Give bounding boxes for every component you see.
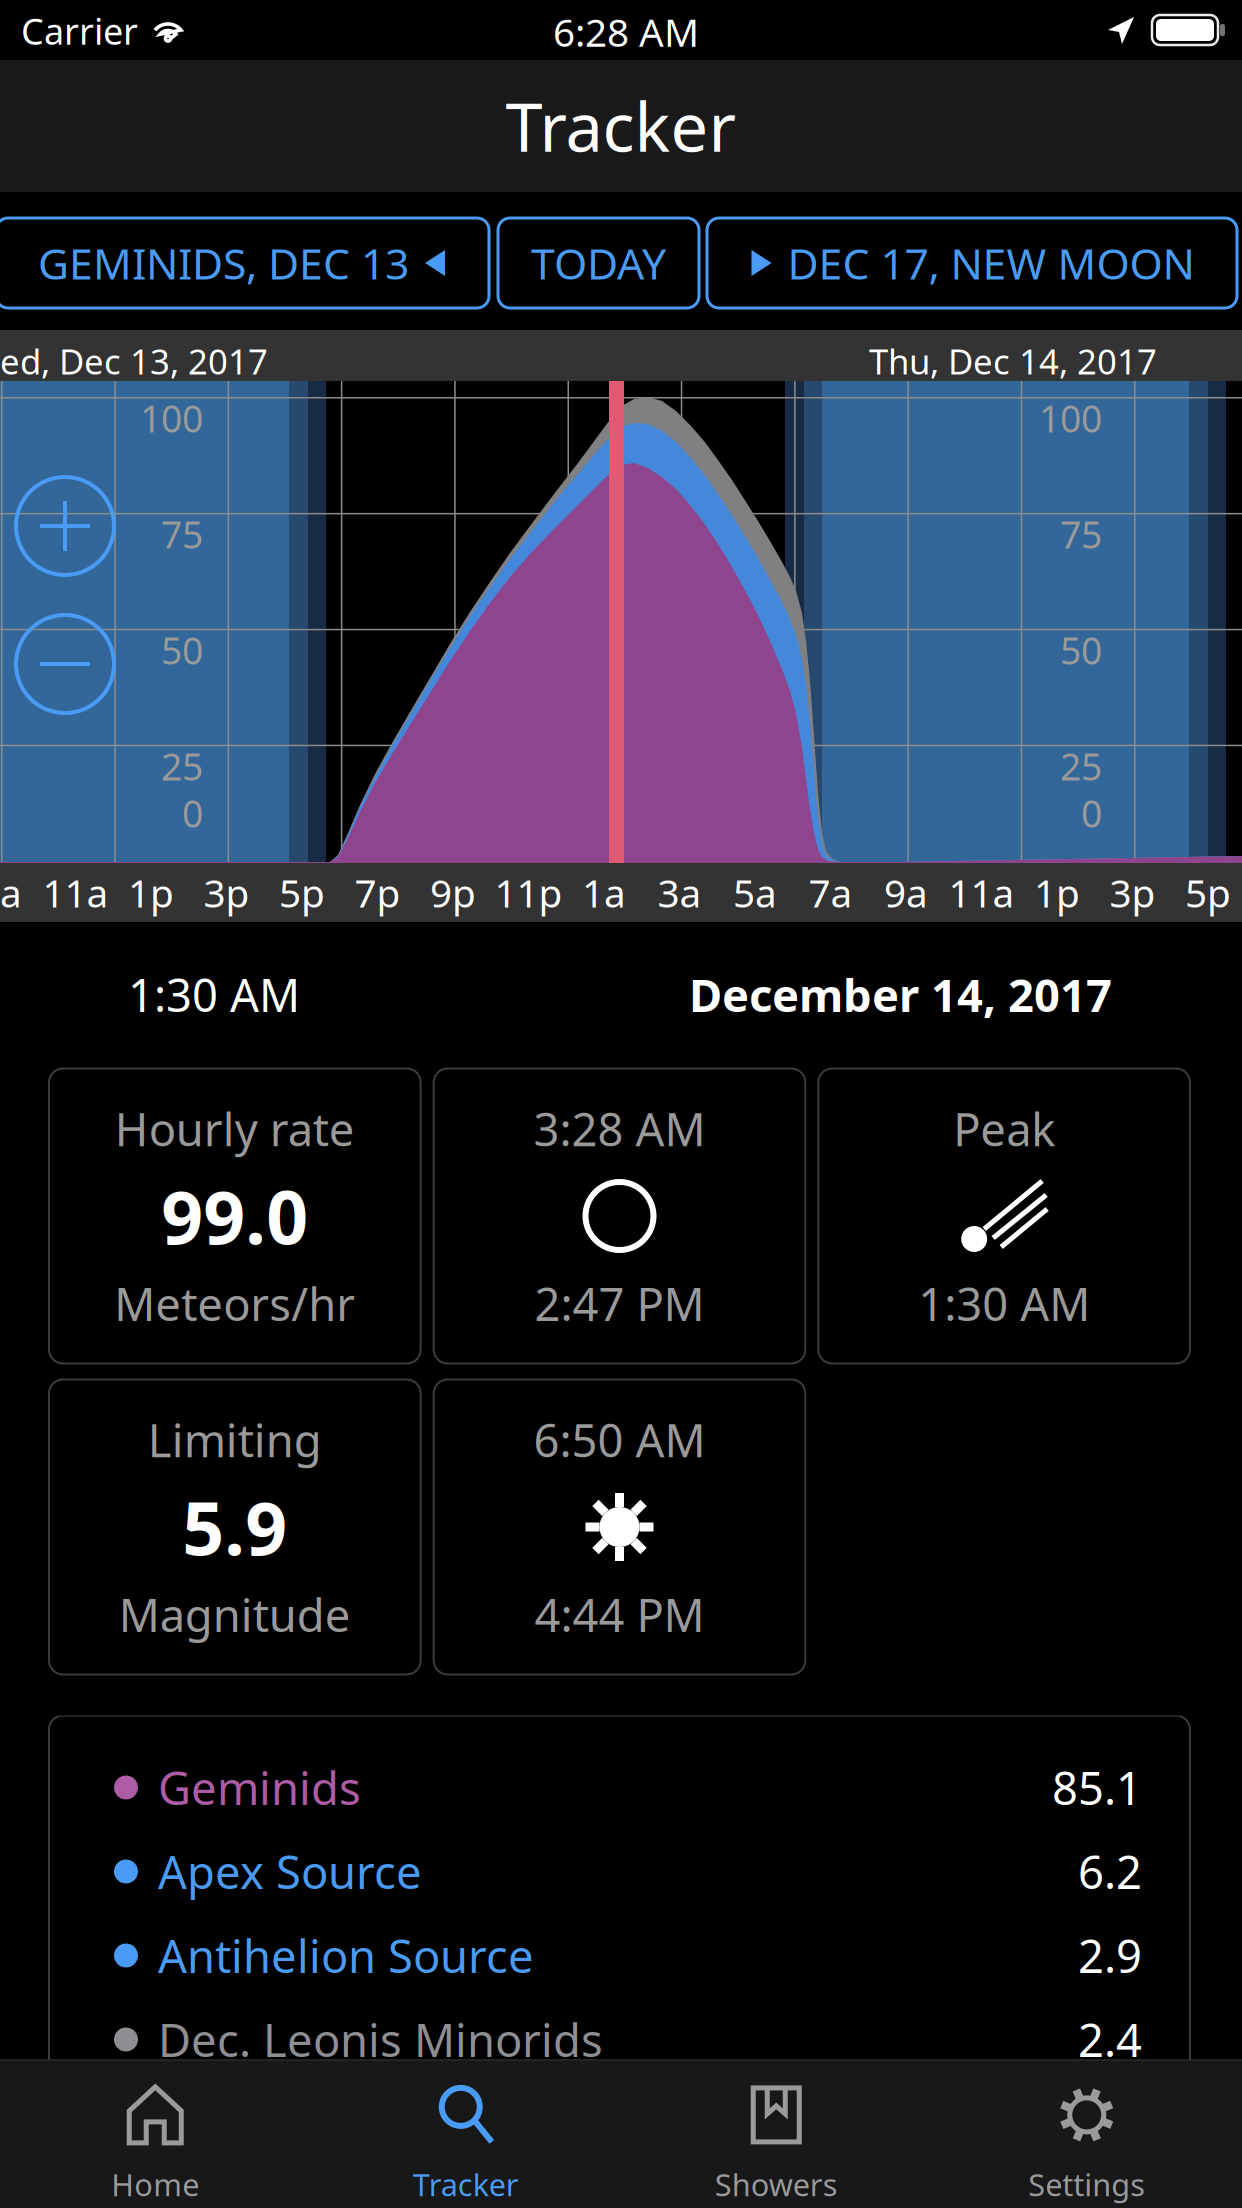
- button[interactable]: Settings: [931, 2061, 1242, 2208]
- staticText: Carrier: [21, 7, 138, 55]
- staticText: 5a: [733, 867, 777, 918]
- staticText: 85.1: [1052, 1757, 1142, 1818]
- staticText: Showers: [715, 2164, 838, 2205]
- staticText: Meteors/hr: [114, 1273, 355, 1333]
- staticText: December 14, 2017: [689, 964, 1112, 1025]
- staticText: Tracker: [413, 2164, 519, 2205]
- button[interactable]: Showers: [621, 2061, 931, 2208]
- staticText: Dec. Leonis Minorids: [158, 2009, 603, 2070]
- staticText: 3p: [203, 867, 249, 918]
- staticText: 3p: [1109, 867, 1155, 918]
- staticText: Hourly rate: [115, 1098, 355, 1159]
- staticText: 9p: [430, 867, 476, 918]
- staticText: 1p: [1034, 867, 1080, 918]
- button[interactable]: DEC 17, NEW MOON: [707, 218, 1237, 308]
- staticText: 6.2: [1078, 1841, 1142, 1902]
- button[interactable]: Zoom in: [16, 477, 114, 575]
- staticText: 5p: [1185, 867, 1231, 918]
- button[interactable]: Dec. Leonis Minorids: [49, 1997, 1190, 2081]
- staticText: 11a: [42, 867, 108, 918]
- staticText: 50: [161, 625, 203, 675]
- button[interactable]: Apex Source: [49, 1829, 1190, 1913]
- staticText: 25: [1060, 741, 1102, 791]
- staticText: 99.0: [161, 1167, 308, 1265]
- button[interactable]: GEMINIDS, DEC 13: [0, 218, 489, 308]
- staticText: 3a: [657, 867, 701, 918]
- staticText: 6:28 AM: [553, 6, 699, 57]
- staticText: GEMINIDS, DEC 13: [38, 235, 409, 291]
- button[interactable]: Antihelion Source: [49, 1913, 1190, 1997]
- button[interactable]: Tracker: [310, 2061, 621, 2208]
- staticText: Peak: [953, 1098, 1055, 1159]
- staticText: DEC 17, NEW MOON: [787, 235, 1194, 291]
- staticText: 11a: [948, 867, 1014, 918]
- staticText: 75: [1060, 509, 1102, 559]
- staticText: 11p: [494, 867, 562, 918]
- staticText: 1a: [582, 867, 626, 918]
- staticText: 9a: [884, 867, 928, 918]
- staticText: 2.4: [1078, 2009, 1142, 2070]
- staticText: 1:30 AM: [128, 964, 300, 1025]
- staticText: Settings: [1028, 2164, 1145, 2205]
- staticText: Tracker: [505, 82, 736, 170]
- staticText: 2:47 PM: [534, 1273, 704, 1333]
- staticText: Thu, Dec 14, 2017: [869, 338, 1157, 384]
- button[interactable]: Geminids: [49, 1745, 1190, 1829]
- staticText: Limiting: [148, 1409, 322, 1470]
- staticText: 100: [140, 393, 203, 443]
- staticText: 1p: [128, 867, 174, 918]
- staticText: Magnitude: [119, 1584, 351, 1644]
- staticText: TODAY: [531, 235, 666, 291]
- button[interactable]: Zoom out: [16, 615, 114, 713]
- staticText: 3:28 AM: [533, 1098, 705, 1159]
- staticText: Apex Source: [158, 1841, 422, 1902]
- staticText: 0: [182, 788, 203, 838]
- button[interactable]: Home: [0, 2061, 310, 2208]
- staticText: Home: [111, 2164, 199, 2205]
- staticText: 4:44 PM: [534, 1584, 704, 1644]
- staticText: Antihelion Source: [158, 1925, 534, 1986]
- button[interactable]: TODAY: [498, 218, 699, 308]
- staticText: 2.9: [1078, 1925, 1142, 1986]
- staticText: Geminids: [158, 1757, 361, 1818]
- staticText: ed, Dec 13, 2017: [0, 338, 268, 384]
- staticText: 50: [1060, 625, 1102, 675]
- staticText: 25: [161, 741, 203, 791]
- staticText: 6:50 AM: [533, 1409, 705, 1470]
- staticText: 100: [1039, 393, 1102, 443]
- staticText: 5.9: [182, 1478, 287, 1576]
- staticText: 7p: [354, 867, 400, 918]
- staticText: 1:30 AM: [918, 1273, 1090, 1333]
- staticText: 0: [1081, 788, 1102, 838]
- staticText: 9a: [0, 867, 22, 918]
- staticText: 75: [161, 509, 203, 559]
- staticText: 5p: [279, 867, 325, 918]
- staticText: 7a: [808, 867, 852, 918]
